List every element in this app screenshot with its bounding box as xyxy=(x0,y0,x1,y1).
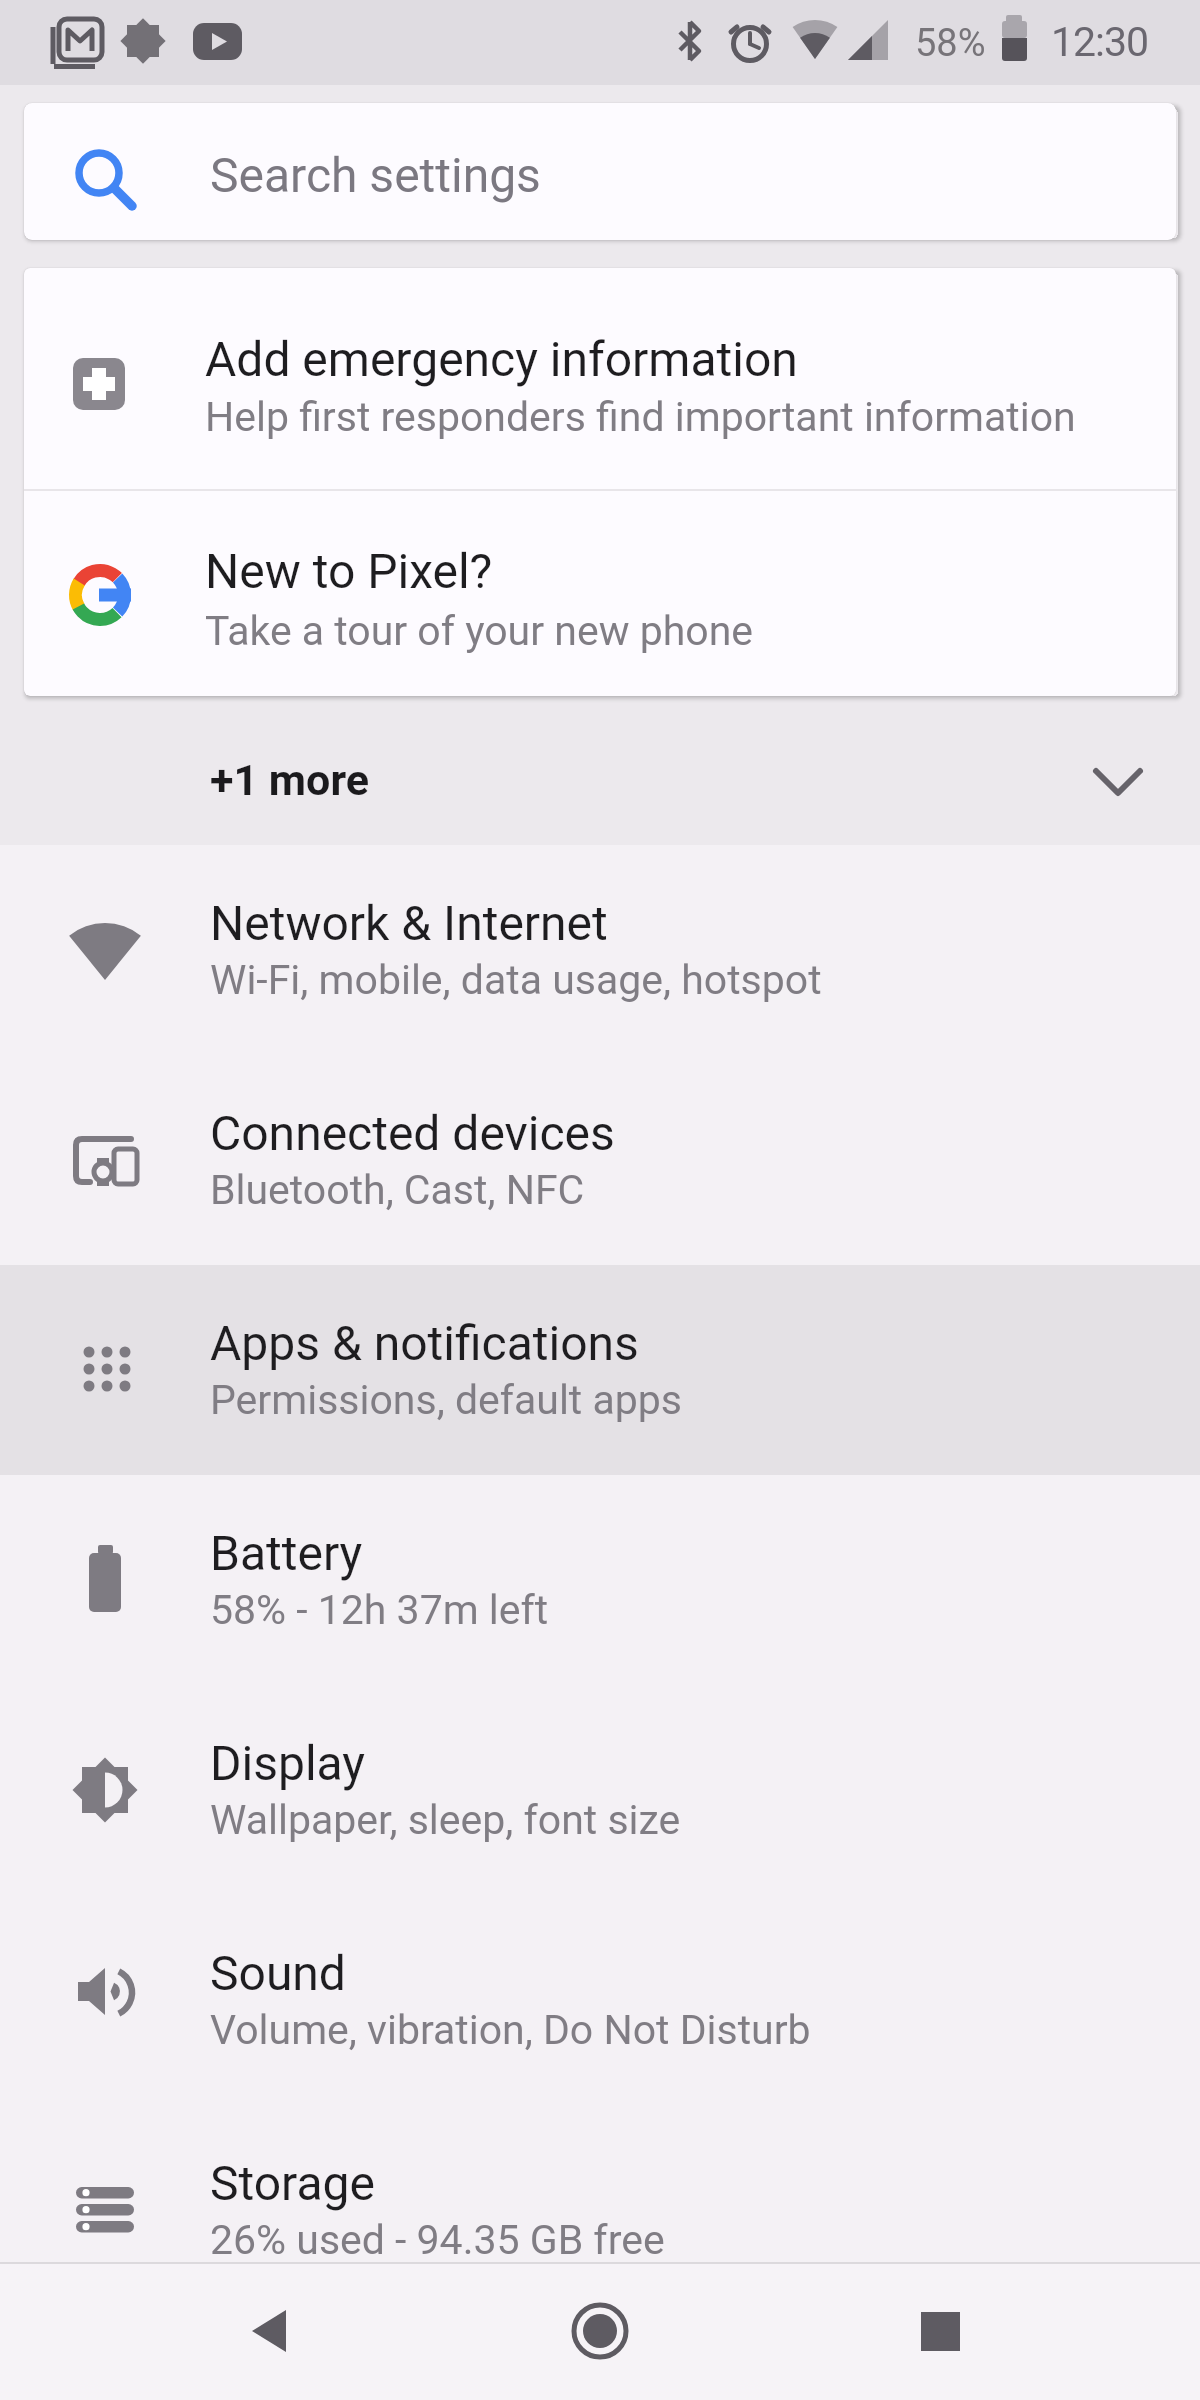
staticText: 58% xyxy=(915,21,986,66)
staticText: Display xyxy=(210,1735,366,1791)
button[interactable]: Display xyxy=(0,1685,1200,1895)
staticText: 58% - 12h 37m left xyxy=(210,1586,549,1634)
staticText: Wi-Fi, mobile, data usage, hotspot xyxy=(210,956,822,1004)
button[interactable]: New to Pixel? xyxy=(24,491,1176,696)
button[interactable]: Battery xyxy=(0,1475,1200,1685)
staticText: New to Pixel? xyxy=(205,543,493,599)
button[interactable]: Sound xyxy=(0,1895,1200,2105)
staticText: Apps & notifications xyxy=(210,1315,639,1371)
button[interactable] xyxy=(400,2262,800,2400)
button[interactable]: Add emergency information xyxy=(24,268,1176,489)
staticText: 12:30 xyxy=(1051,18,1149,66)
button[interactable]: +1 more xyxy=(0,696,1200,845)
button[interactable]: Storage xyxy=(0,2105,1200,2315)
staticText: Help first responders find important inf… xyxy=(205,393,1076,441)
button[interactable] xyxy=(800,2262,1200,2400)
staticText: Search settings xyxy=(210,147,541,203)
staticText: Wallpaper, sleep, font size xyxy=(210,1796,681,1844)
staticText: Volume, vibration, Do Not Disturb xyxy=(210,2006,811,2054)
staticText: Take a tour of your new phone xyxy=(205,607,754,655)
button[interactable]: Apps & notifications xyxy=(0,1265,1200,1475)
staticText: Connected devices xyxy=(210,1105,615,1161)
button[interactable]: Network & Internet xyxy=(0,845,1200,1055)
button[interactable]: Search settings xyxy=(24,103,1176,240)
staticText: Battery xyxy=(210,1525,363,1581)
staticText: 26% used - 94.35 GB free xyxy=(210,2216,665,2264)
staticText: Permissions, default apps xyxy=(210,1376,682,1424)
staticText: Storage xyxy=(210,2155,375,2211)
staticText: Sound xyxy=(210,1945,346,2001)
staticText: Bluetooth, Cast, NFC xyxy=(210,1166,585,1214)
staticText: +1 more xyxy=(210,755,369,805)
staticText: Network & Internet xyxy=(210,895,608,951)
staticText: Add emergency information xyxy=(205,331,798,387)
button[interactable] xyxy=(0,2262,400,2400)
button[interactable]: Connected devices xyxy=(0,1055,1200,1265)
